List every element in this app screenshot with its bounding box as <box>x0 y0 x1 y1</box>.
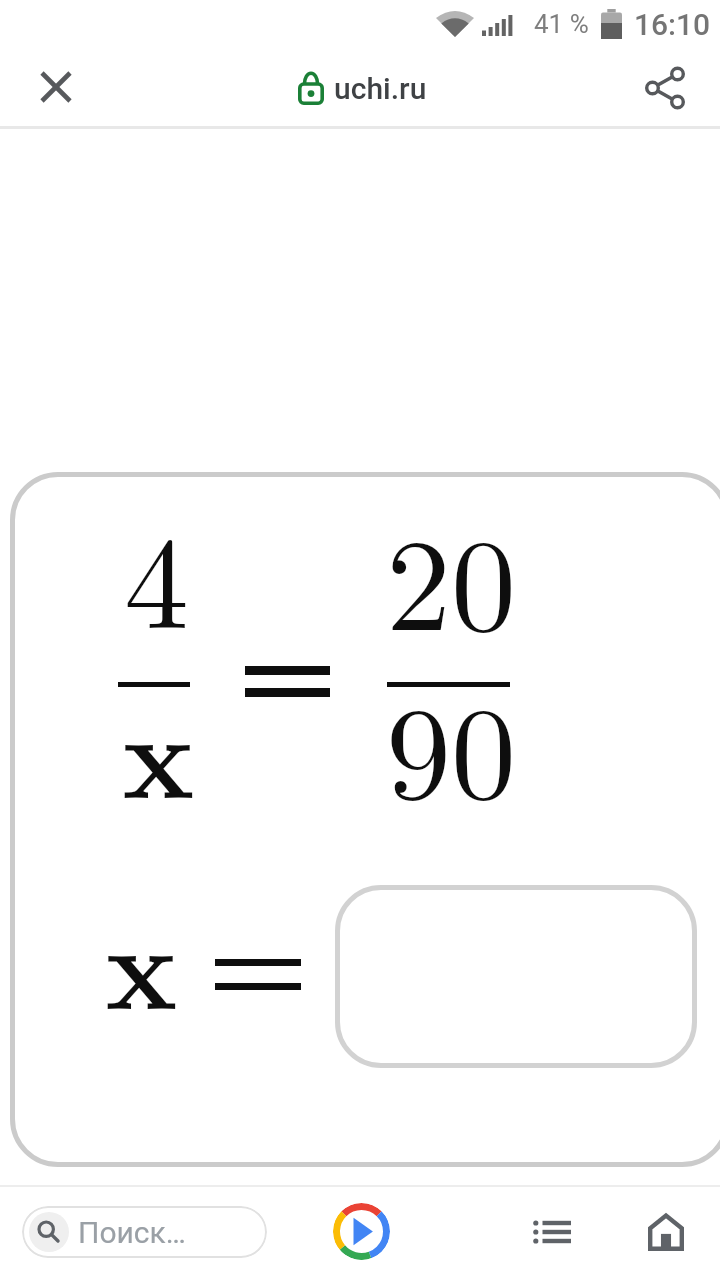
staticText: 4 <box>124 481 190 665</box>
button[interactable] <box>524 1204 580 1260</box>
button[interactable] <box>333 1203 390 1260</box>
button[interactable]: uchi.ru <box>298 62 427 114</box>
staticText: uchi.ru <box>334 71 427 106</box>
staticText: x <box>105 873 178 1044</box>
button[interactable]: Поиск… <box>22 1206 267 1258</box>
staticText: x <box>122 662 195 833</box>
staticText: 20 <box>386 483 517 667</box>
button[interactable] <box>335 885 697 1068</box>
button[interactable] <box>637 60 693 116</box>
staticText: 41 % <box>534 9 589 39</box>
staticText: 16:10 <box>634 7 711 42</box>
button[interactable] <box>28 59 84 115</box>
staticText: 90 <box>386 651 517 835</box>
staticText: Поиск… <box>78 1215 186 1250</box>
button[interactable] <box>638 1204 694 1260</box>
